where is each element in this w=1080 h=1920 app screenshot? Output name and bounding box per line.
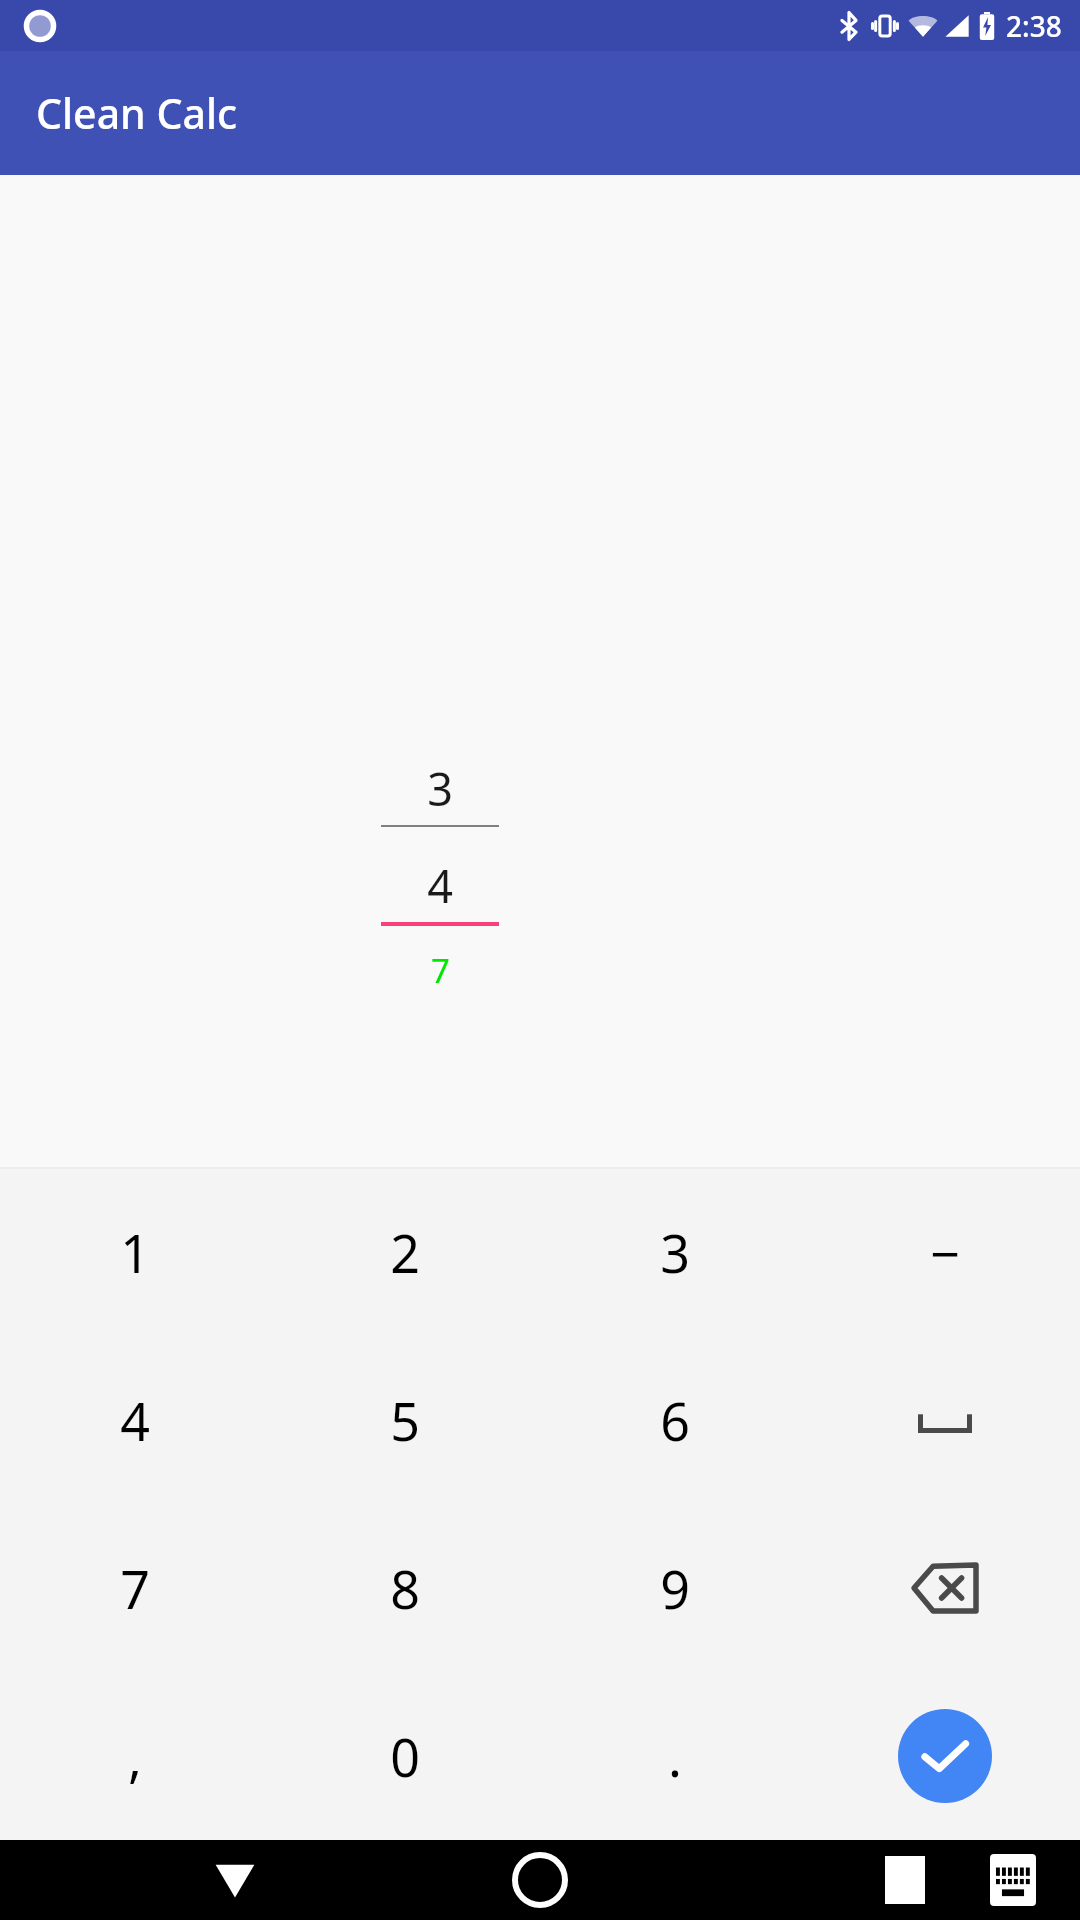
staticText: 9 — [660, 1553, 690, 1624]
button[interactable]: Switch keyboard — [958, 1840, 1068, 1920]
button[interactable]: − — [810, 1169, 1080, 1336]
staticText: 7 — [120, 1553, 150, 1624]
staticText: 3 — [427, 758, 453, 819]
button[interactable]: Home — [485, 1840, 595, 1920]
button[interactable]: Clean Calc — [0, 51, 1080, 175]
staticText: 2 — [390, 1217, 420, 1288]
staticText: 4 — [120, 1385, 150, 1456]
button[interactable]: 2 — [270, 1169, 540, 1336]
staticText: 0 — [390, 1721, 420, 1792]
staticText: 3 — [660, 1217, 690, 1288]
button[interactable] — [898, 1709, 992, 1803]
staticText: , — [128, 1721, 142, 1792]
staticText: . — [668, 1721, 682, 1792]
button[interactable]: 7 — [0, 1504, 270, 1672]
staticText: 1 — [120, 1217, 150, 1288]
button[interactable]: Space — [810, 1336, 1080, 1504]
button[interactable]: 6 — [540, 1336, 810, 1504]
button[interactable]: Backspace — [810, 1504, 1080, 1672]
button[interactable]: , — [0, 1672, 270, 1840]
button[interactable]: Hide keyboard — [180, 1840, 290, 1920]
other: Confirm — [810, 1672, 1080, 1840]
button[interactable]: 8 — [270, 1504, 540, 1672]
button[interactable]: 4 — [0, 1336, 270, 1504]
staticText: 4 — [427, 855, 453, 916]
button[interactable]: 9 — [540, 1504, 810, 1672]
button[interactable]: 0 — [270, 1672, 540, 1840]
staticText: 7 — [431, 948, 450, 993]
staticText: 5 — [390, 1385, 420, 1456]
staticText: − — [930, 1217, 960, 1288]
staticText: 2:38 — [1006, 7, 1062, 45]
button[interactable]: 3 — [540, 1169, 810, 1336]
staticText: 6 — [660, 1385, 690, 1456]
button[interactable]: 5 — [270, 1336, 540, 1504]
button[interactable]: 1 — [0, 1169, 270, 1336]
staticText: Clean Calc — [36, 85, 238, 141]
button[interactable]: . — [540, 1672, 810, 1840]
staticText: 8 — [390, 1553, 420, 1624]
button[interactable]: Recent apps — [850, 1840, 960, 1920]
